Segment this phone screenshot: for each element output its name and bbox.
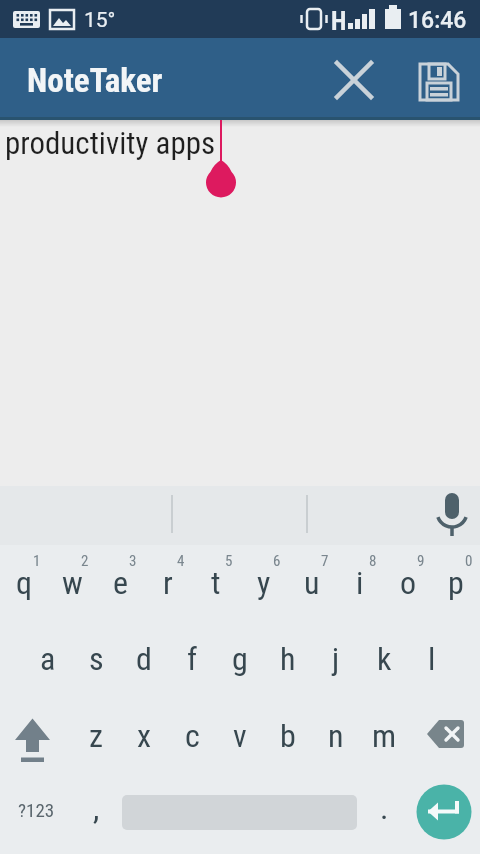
button[interactable]: [423, 712, 475, 760]
button[interactable]: k: [360, 621, 408, 696]
button[interactable]: q: [0, 545, 48, 620]
staticText: 16:46: [408, 7, 467, 32]
button[interactable]: x: [120, 698, 168, 773]
button[interactable]: h: [264, 621, 312, 696]
staticText: productivity apps: [5, 125, 216, 161]
button[interactable]: c: [168, 698, 216, 773]
staticText: NoteTaker: [27, 61, 163, 100]
staticText: y: [257, 564, 271, 602]
staticText: 4: [177, 552, 185, 570]
staticText: n: [328, 717, 344, 755]
button[interactable]: [414, 56, 462, 104]
button[interactable]: ?123: [10, 772, 62, 847]
staticText: a: [40, 640, 56, 678]
staticText: i: [356, 564, 364, 602]
button[interactable]: o: [384, 545, 432, 620]
button[interactable]: f: [168, 621, 216, 696]
staticText: m: [372, 717, 397, 755]
staticText: o: [400, 564, 417, 602]
staticText: H: [331, 7, 347, 31]
staticText: 0: [465, 552, 473, 570]
staticText: l: [428, 640, 436, 678]
button[interactable]: u: [288, 545, 336, 620]
button[interactable]: g: [216, 621, 264, 696]
staticText: 15°: [84, 8, 116, 30]
staticText: 7: [321, 552, 329, 570]
staticText: w: [62, 564, 83, 602]
staticText: g: [232, 640, 248, 678]
staticText: q: [16, 564, 33, 602]
staticText: u: [304, 564, 320, 602]
button[interactable]: i: [336, 545, 384, 620]
staticText: t: [211, 564, 221, 602]
button[interactable]: m: [360, 698, 408, 773]
staticText: p: [448, 564, 464, 602]
staticText: 1: [33, 552, 41, 570]
button[interactable]: p: [432, 545, 480, 620]
staticText: x: [137, 717, 152, 755]
staticText: ,: [93, 789, 100, 827]
button[interactable]: d: [120, 621, 168, 696]
button[interactable]: [330, 56, 378, 104]
button[interactable]: w: [48, 545, 96, 620]
staticText: 3: [129, 552, 137, 570]
button[interactable]: n: [312, 698, 360, 773]
button[interactable]: .: [360, 770, 408, 845]
staticText: d: [136, 640, 152, 678]
staticText: k: [377, 640, 392, 678]
staticText: z: [89, 717, 104, 755]
staticText: b: [280, 717, 296, 755]
staticText: 6: [273, 552, 281, 570]
button[interactable]: b: [264, 698, 312, 773]
button[interactable]: s: [72, 621, 120, 696]
button[interactable]: r: [144, 545, 192, 620]
staticText: s: [89, 640, 104, 678]
staticText: 5: [225, 552, 233, 570]
button[interactable]: [8, 706, 58, 768]
staticText: ?123: [18, 799, 55, 821]
staticText: j: [332, 640, 340, 678]
button[interactable]: y: [240, 545, 288, 620]
staticText: 8: [369, 552, 377, 570]
button[interactable]: a: [24, 621, 72, 696]
button[interactable]: [416, 784, 472, 840]
staticText: h: [280, 640, 296, 678]
staticText: e: [113, 564, 128, 602]
button[interactable]: v: [216, 698, 264, 773]
staticText: 2: [81, 552, 89, 570]
staticText: f: [187, 640, 198, 678]
button[interactable]: j: [312, 621, 360, 696]
staticText: .: [380, 789, 389, 827]
button[interactable]: ,: [72, 770, 120, 845]
button[interactable]: t: [192, 545, 240, 620]
staticText: v: [233, 717, 247, 755]
button[interactable]: z: [72, 698, 120, 773]
button[interactable]: e: [96, 545, 144, 620]
button[interactable]: [430, 488, 474, 542]
staticText: r: [163, 564, 173, 602]
button[interactable]: l: [408, 621, 456, 696]
staticText: c: [185, 717, 200, 755]
staticText: 9: [417, 552, 425, 570]
